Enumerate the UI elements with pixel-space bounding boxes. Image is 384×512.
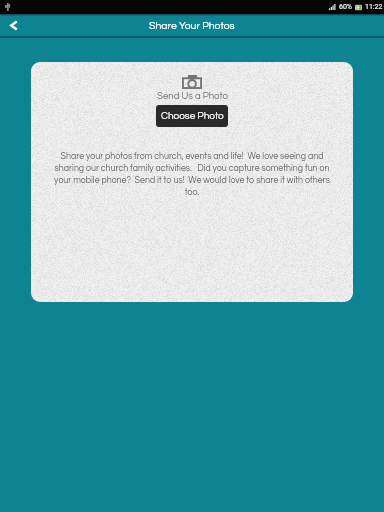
button[interactable]: Choose Photo — [156, 105, 228, 127]
staticText: Share your photos from church, events an… — [47, 152, 337, 197]
staticText: Share Your Photos — [149, 20, 235, 31]
staticText: 60% — [339, 3, 352, 11]
staticText: Choose Photo — [161, 111, 224, 121]
staticText: 11:22 — [365, 3, 383, 11]
staticText: Send Us a Photo — [157, 91, 228, 101]
button[interactable]: Back — [0, 14, 27, 38]
